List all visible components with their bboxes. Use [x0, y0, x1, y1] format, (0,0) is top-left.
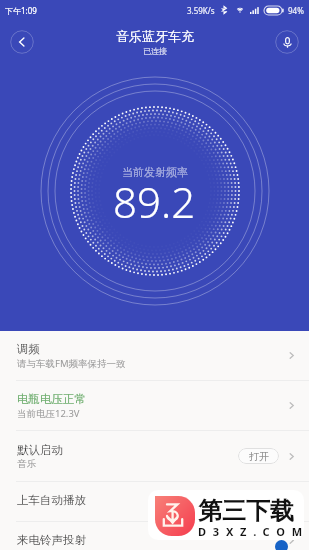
staticText: 第三下载	[198, 496, 294, 526]
button[interactable]: 来电铃声投射	[0, 522, 309, 550]
button[interactable]: Back	[10, 30, 34, 54]
staticText: 调频	[17, 342, 40, 356]
button[interactable]: 上车自动播放	[0, 482, 309, 521]
button[interactable]: Voice assistant	[275, 30, 299, 54]
staticText: 电瓶电压正常	[17, 392, 86, 406]
staticText: 音乐	[17, 458, 36, 470]
button[interactable]: 调频	[0, 331, 309, 380]
staticText: 下午1:09	[5, 5, 37, 16]
staticText: 当前电压12.3V	[17, 407, 80, 420]
staticText: 上车自动播放	[17, 493, 286, 507]
button[interactable]: 电瓶电压正常	[0, 381, 309, 430]
staticText: 已连接	[143, 46, 167, 56]
button[interactable]: 默认启动	[0, 431, 309, 481]
staticText: 94%	[288, 5, 304, 16]
staticText: 音乐蓝牙车充	[116, 28, 194, 44]
button[interactable]: 打开	[238, 448, 279, 464]
staticText: D3XZ.COM	[198, 524, 309, 539]
staticText: 来电铃声投射	[17, 533, 286, 547]
staticText: 当前发射频率	[122, 165, 188, 179]
staticText: 3.59K/s	[187, 5, 215, 16]
staticText: 89.2	[113, 173, 196, 230]
staticText: 请与车载FM频率保持一致	[17, 357, 126, 370]
staticText: 打开	[249, 450, 269, 463]
staticText: 默认启动	[17, 443, 63, 457]
